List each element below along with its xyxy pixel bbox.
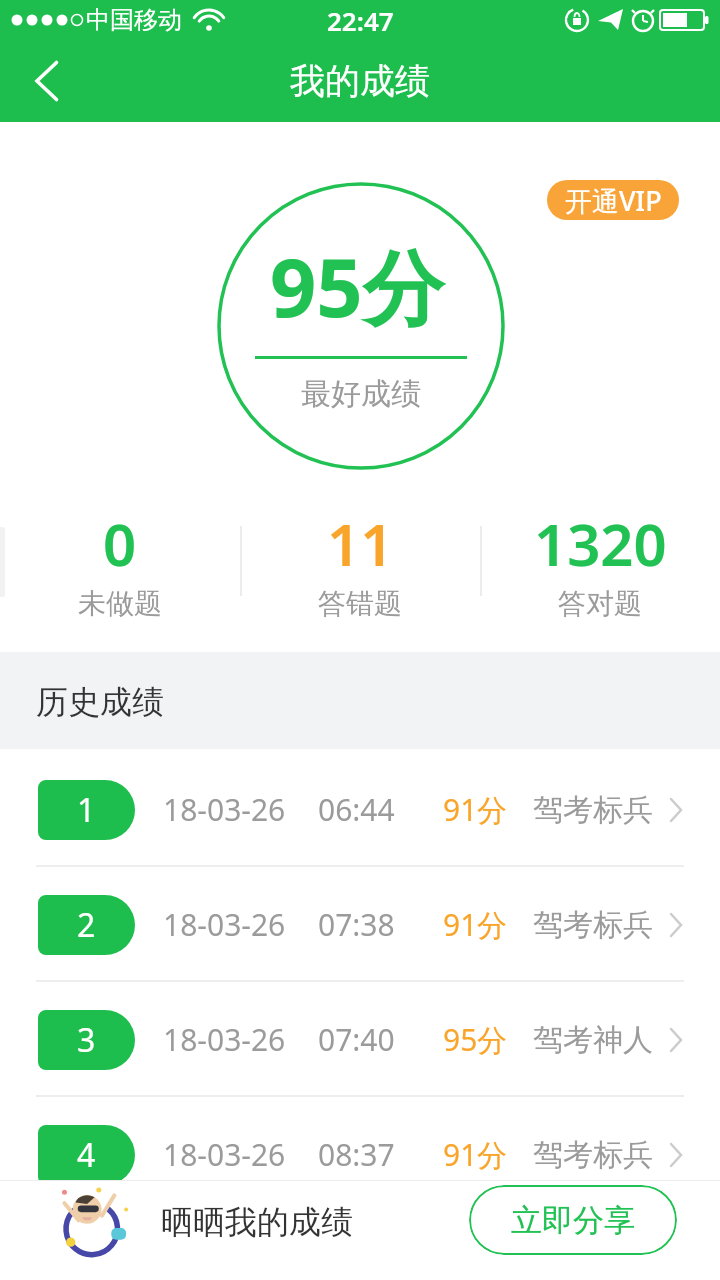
staticText: 开通VIP (565, 182, 662, 219)
staticText: 4 (77, 1133, 96, 1177)
button[interactable]: 开通VIP (547, 180, 679, 220)
staticText: 未做题 (78, 586, 162, 621)
button[interactable] (14, 48, 78, 114)
button[interactable]: 4 (0, 1097, 720, 1212)
staticText: 06:44 (318, 789, 395, 830)
button[interactable]: 立即分享 (469, 1185, 677, 1255)
staticText: 答错题 (318, 586, 402, 621)
staticText: 18-03-26 (163, 1134, 286, 1175)
button[interactable]: 2 (0, 867, 720, 982)
staticText: 11 (327, 504, 394, 583)
staticText: 我的成绩 (290, 59, 430, 103)
staticText: 91分 (443, 1134, 508, 1175)
staticText: 2 (77, 903, 96, 947)
staticText: 91分 (443, 789, 508, 830)
staticText: 22:47 (327, 3, 394, 38)
staticText: 答对题 (558, 586, 642, 621)
staticText: 18-03-26 (163, 789, 286, 830)
staticText: 1320 (534, 504, 667, 583)
staticText: 历史成绩 (36, 682, 164, 722)
staticText: 95分 (443, 1019, 508, 1060)
staticText: 18-03-26 (163, 904, 286, 945)
staticText: 晒晒我的成绩 (161, 1202, 353, 1242)
button[interactable]: 3 (0, 982, 720, 1097)
staticText: 18-03-26 (163, 1019, 286, 1060)
staticText: 1 (77, 788, 96, 832)
staticText: 驾考标兵 (533, 791, 653, 829)
staticText: 驾考标兵 (533, 1136, 653, 1174)
staticText: 驾考神人 (533, 1021, 653, 1059)
staticText: 07:40 (318, 1019, 395, 1060)
staticText: 3 (77, 1018, 96, 1062)
staticText: 08:37 (318, 1134, 395, 1175)
staticText: 驾考标兵 (533, 906, 653, 944)
staticText: 中国移动 (86, 5, 182, 35)
staticText: 07:38 (318, 904, 395, 945)
button[interactable]: 1 (0, 752, 720, 867)
staticText: 立即分享 (511, 1201, 635, 1240)
staticText: 95分 (270, 230, 444, 341)
staticText: 最好成绩 (301, 375, 421, 413)
staticText: 0 (103, 504, 137, 583)
staticText: 91分 (443, 904, 508, 945)
